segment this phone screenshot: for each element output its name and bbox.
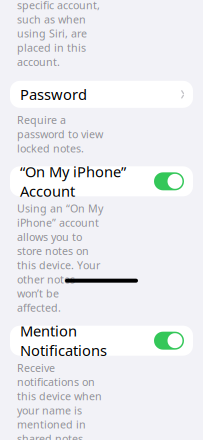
staticText: Using an “On My iPhone” account allows y… (17, 201, 103, 315)
button[interactable]: Toggle Mention Notifications (154, 332, 184, 350)
staticText: Receive notifications on this device whe… (17, 361, 102, 440)
button[interactable]: Password (10, 81, 193, 108)
staticText: Notes created outside a specific account… (17, 0, 100, 69)
staticText: “On My iPhone” Account (20, 162, 126, 201)
staticText: Mention Notifications (20, 321, 107, 360)
staticText: Require a password to view locked notes. (17, 113, 103, 155)
staticText: Password (20, 85, 87, 104)
button[interactable]: Toggle “On My iPhone” Account (154, 172, 184, 190)
